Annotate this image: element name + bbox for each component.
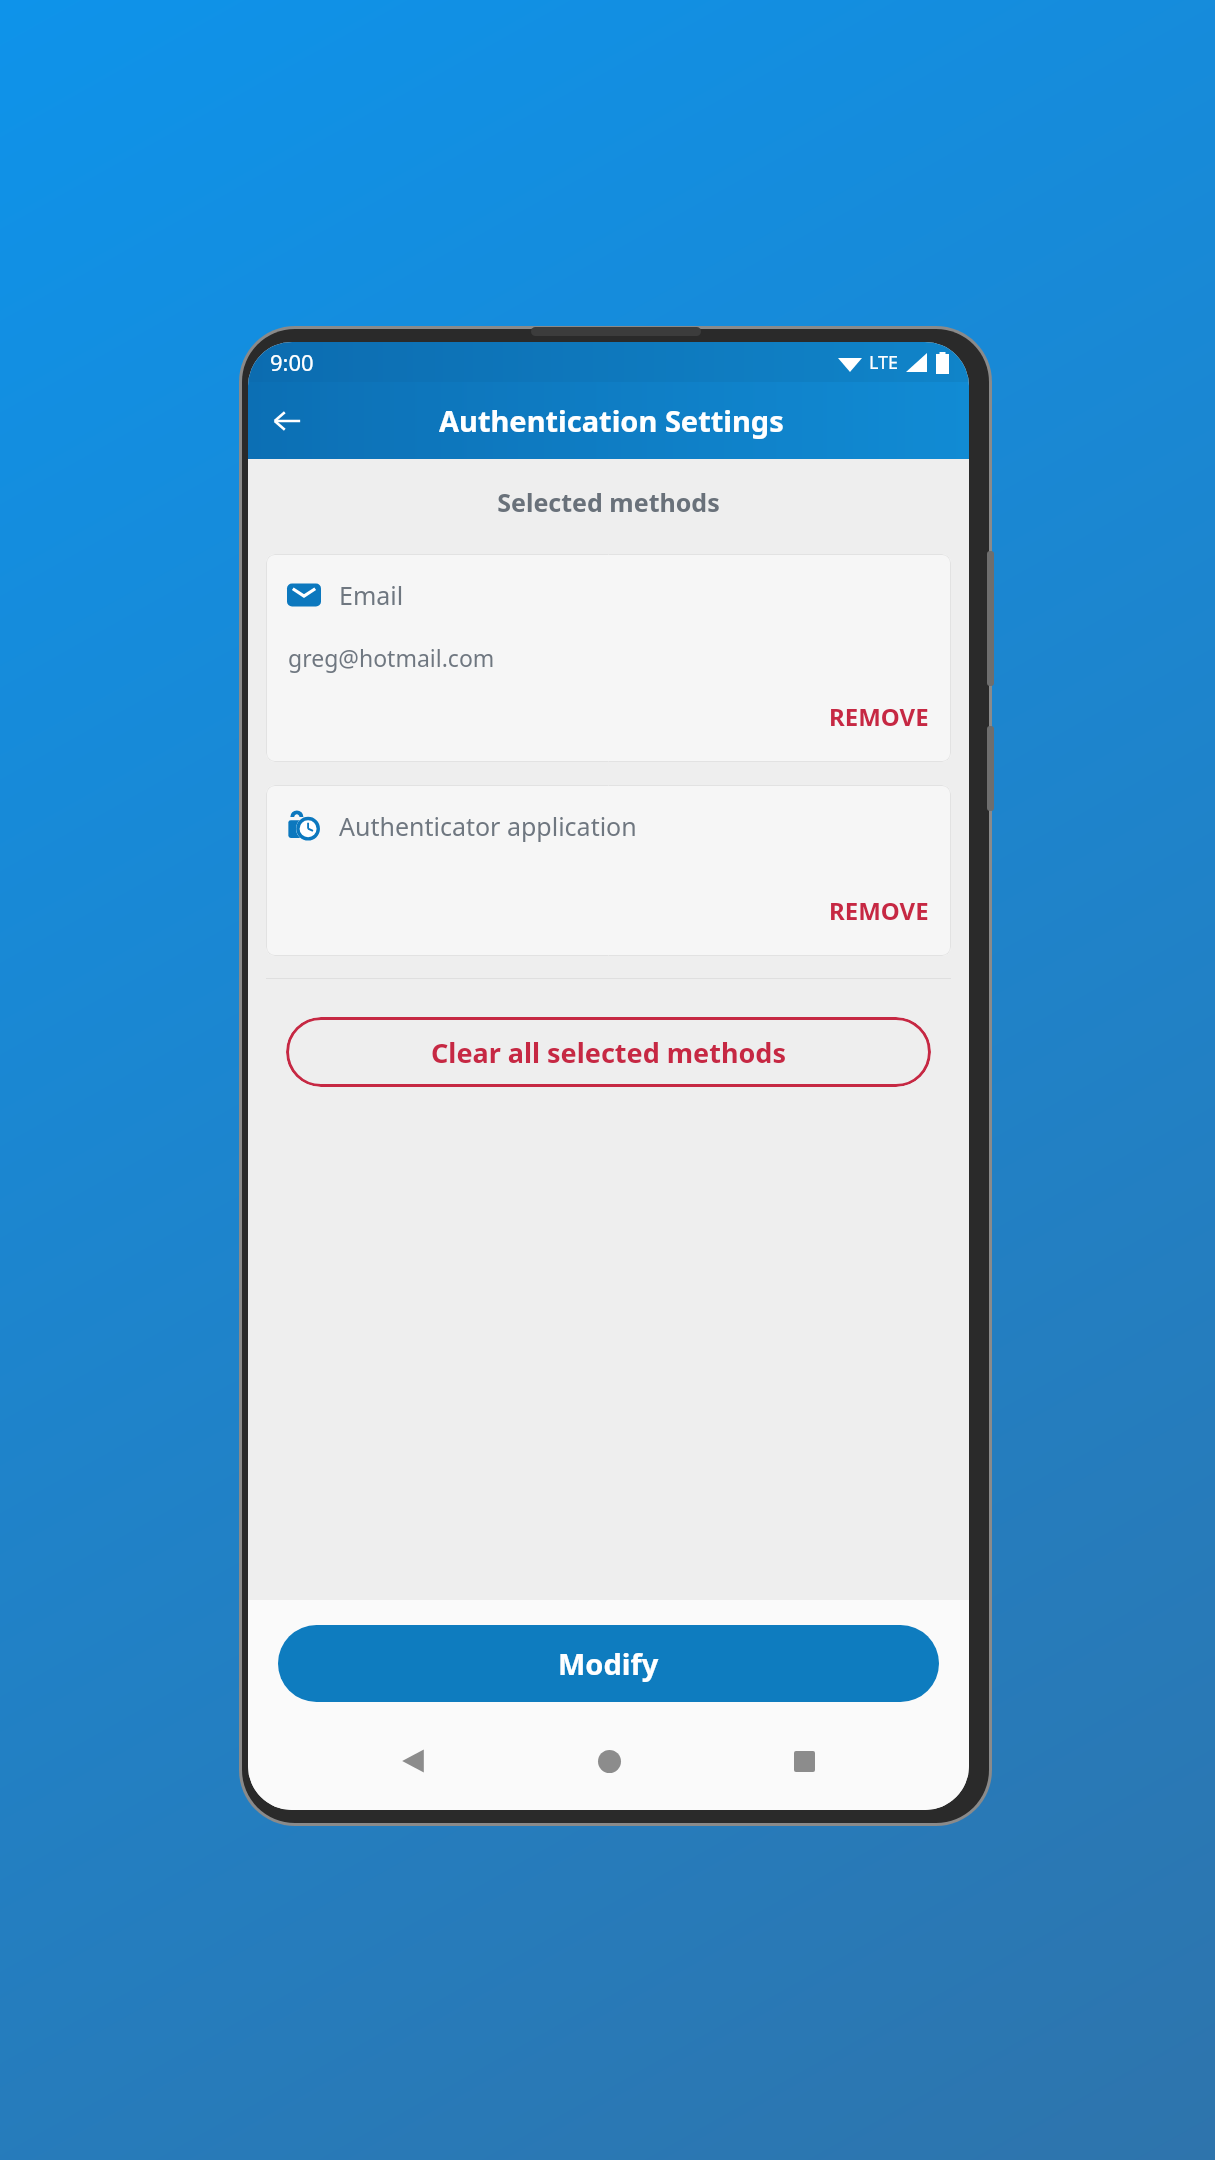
staticText: REMOVE — [829, 700, 929, 733]
button[interactable]: REMOVE — [815, 885, 943, 936]
staticText: Modify — [558, 1644, 659, 1683]
button[interactable]: Authenticator application — [266, 785, 951, 956]
staticText: Selected methods — [248, 485, 969, 519]
button[interactable]: REMOVE — [815, 691, 943, 742]
staticText: Clear all selected methods — [431, 1034, 786, 1071]
button[interactable]: Back — [260, 394, 314, 448]
staticText: Email — [339, 578, 404, 612]
staticText: 9:00 — [270, 347, 314, 377]
button[interactable]: Modify — [278, 1625, 939, 1702]
staticText: Authentication Settings — [439, 401, 784, 440]
button[interactable]: Recent apps — [773, 1730, 835, 1792]
button[interactable]: Email — [266, 554, 951, 762]
staticText: LTE — [869, 350, 899, 375]
button[interactable]: Home — [578, 1730, 640, 1792]
staticText: greg@hotmail.com — [288, 642, 495, 673]
staticText: REMOVE — [829, 894, 929, 927]
button[interactable]: Back — [382, 1730, 444, 1792]
button[interactable]: Clear all selected methods — [286, 1017, 931, 1087]
staticText: Authenticator application — [339, 809, 637, 843]
